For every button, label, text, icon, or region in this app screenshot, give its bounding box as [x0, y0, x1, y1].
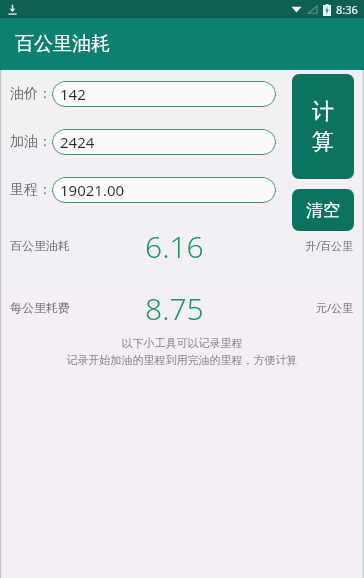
staticText: 油价：	[10, 85, 52, 103]
staticText: 以下小工具可以记录里程	[0, 336, 364, 350]
staticText: 元/公里	[316, 300, 354, 315]
staticText: 记录开始加油的里程到用完油的里程，方便计算	[0, 353, 364, 367]
staticText: 计	[312, 98, 334, 126]
staticText: 清空	[306, 200, 340, 221]
staticText: 升/百公里	[305, 238, 354, 253]
staticText: 2424	[60, 132, 95, 152]
button[interactable]: 清空	[292, 189, 354, 231]
staticText: 6.16	[145, 226, 204, 264]
staticText: 8:36	[336, 2, 358, 17]
staticText: 百公里油耗	[15, 32, 110, 56]
staticText: 加油：	[10, 133, 52, 151]
button[interactable]: 142	[52, 81, 276, 107]
button[interactable]: 19021.00	[52, 177, 276, 203]
staticText: 142	[60, 84, 86, 104]
staticText: 19021.00	[60, 180, 125, 200]
staticText: 百公里油耗	[10, 238, 70, 253]
staticText: 8.75	[145, 288, 204, 326]
button[interactable]: 2424	[52, 129, 276, 155]
staticText: 每公里耗费	[10, 300, 70, 315]
staticText: 里程：	[10, 181, 52, 199]
staticText: 算	[312, 128, 334, 156]
button[interactable]: 计	[292, 74, 354, 179]
